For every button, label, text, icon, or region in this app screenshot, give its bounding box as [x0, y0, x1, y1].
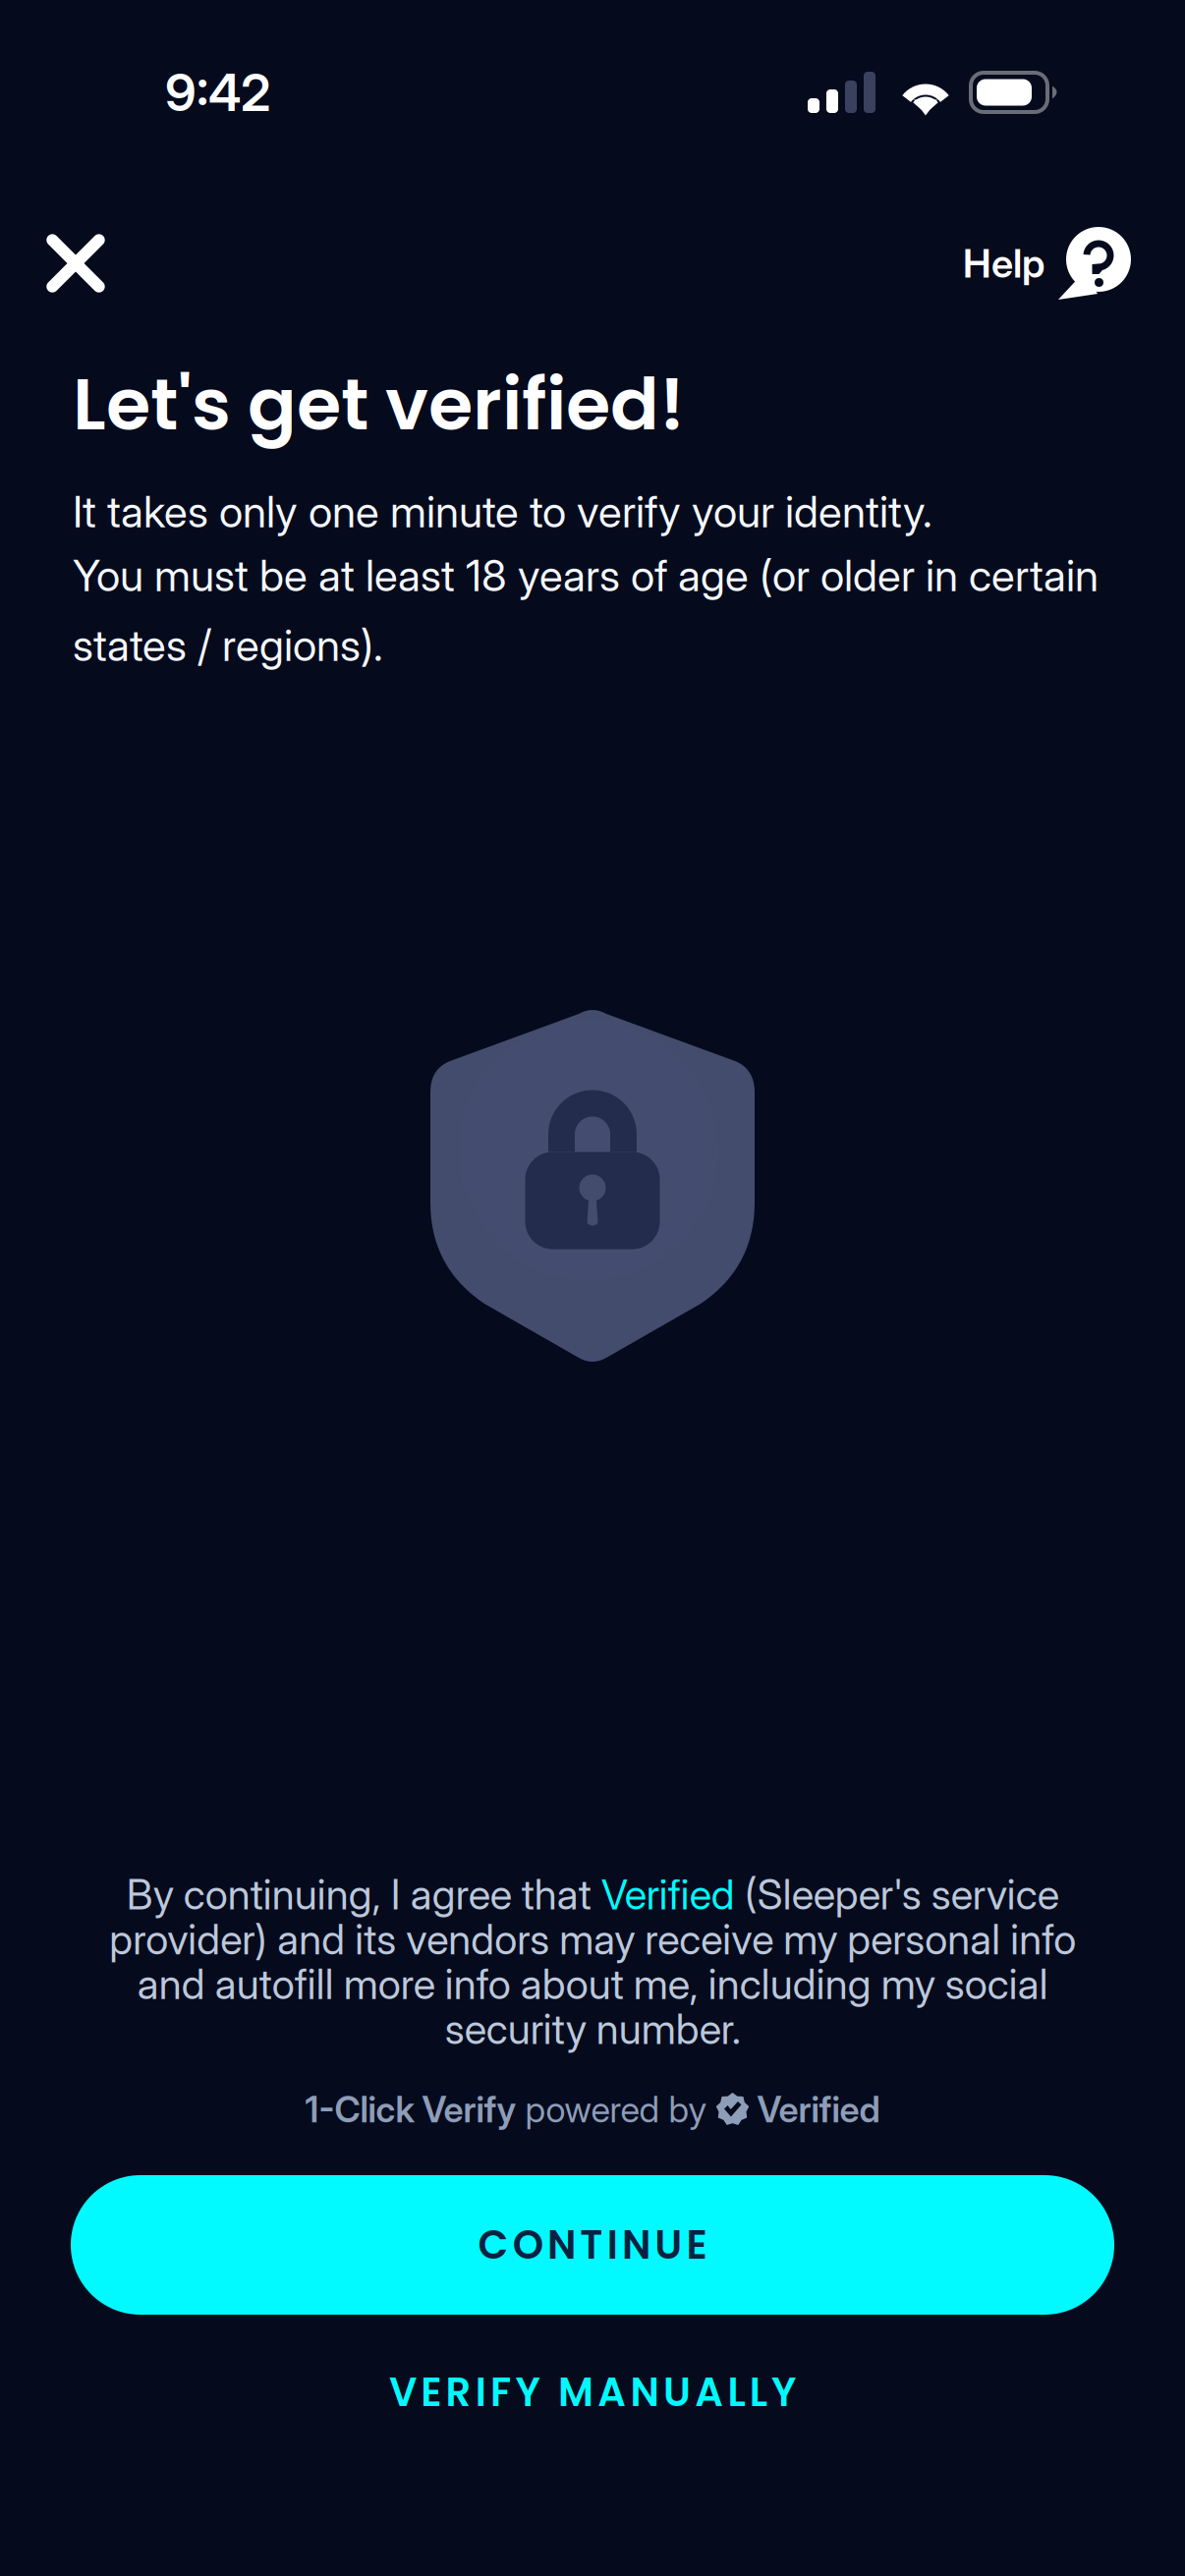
staticText: VERIFY MANUALLY — [389, 2365, 796, 2420]
staticText: CONTINUE — [478, 2217, 707, 2272]
button[interactable]: Close — [27, 232, 125, 295]
staticText: It takes only one minute to verify your … — [73, 485, 932, 538]
staticText: Verified — [749, 2088, 880, 2131]
staticText: You must be at least 18 years of age (or… — [73, 549, 1099, 672]
staticText: 9:42 — [165, 61, 270, 123]
staticText: 1-Click Verify — [305, 2088, 516, 2131]
staticText: powered by — [516, 2088, 716, 2131]
staticText: Let's get verified! — [73, 354, 685, 455]
button[interactable]: VERIFY MANUALLY — [0, 2315, 1185, 2420]
button[interactable]: Help — [963, 224, 1131, 303]
staticText: Help — [963, 240, 1044, 287]
staticText: By continuing, I agree that Verified (Sl… — [109, 1870, 1076, 2054]
button[interactable]: CONTINUE — [71, 2175, 1114, 2315]
